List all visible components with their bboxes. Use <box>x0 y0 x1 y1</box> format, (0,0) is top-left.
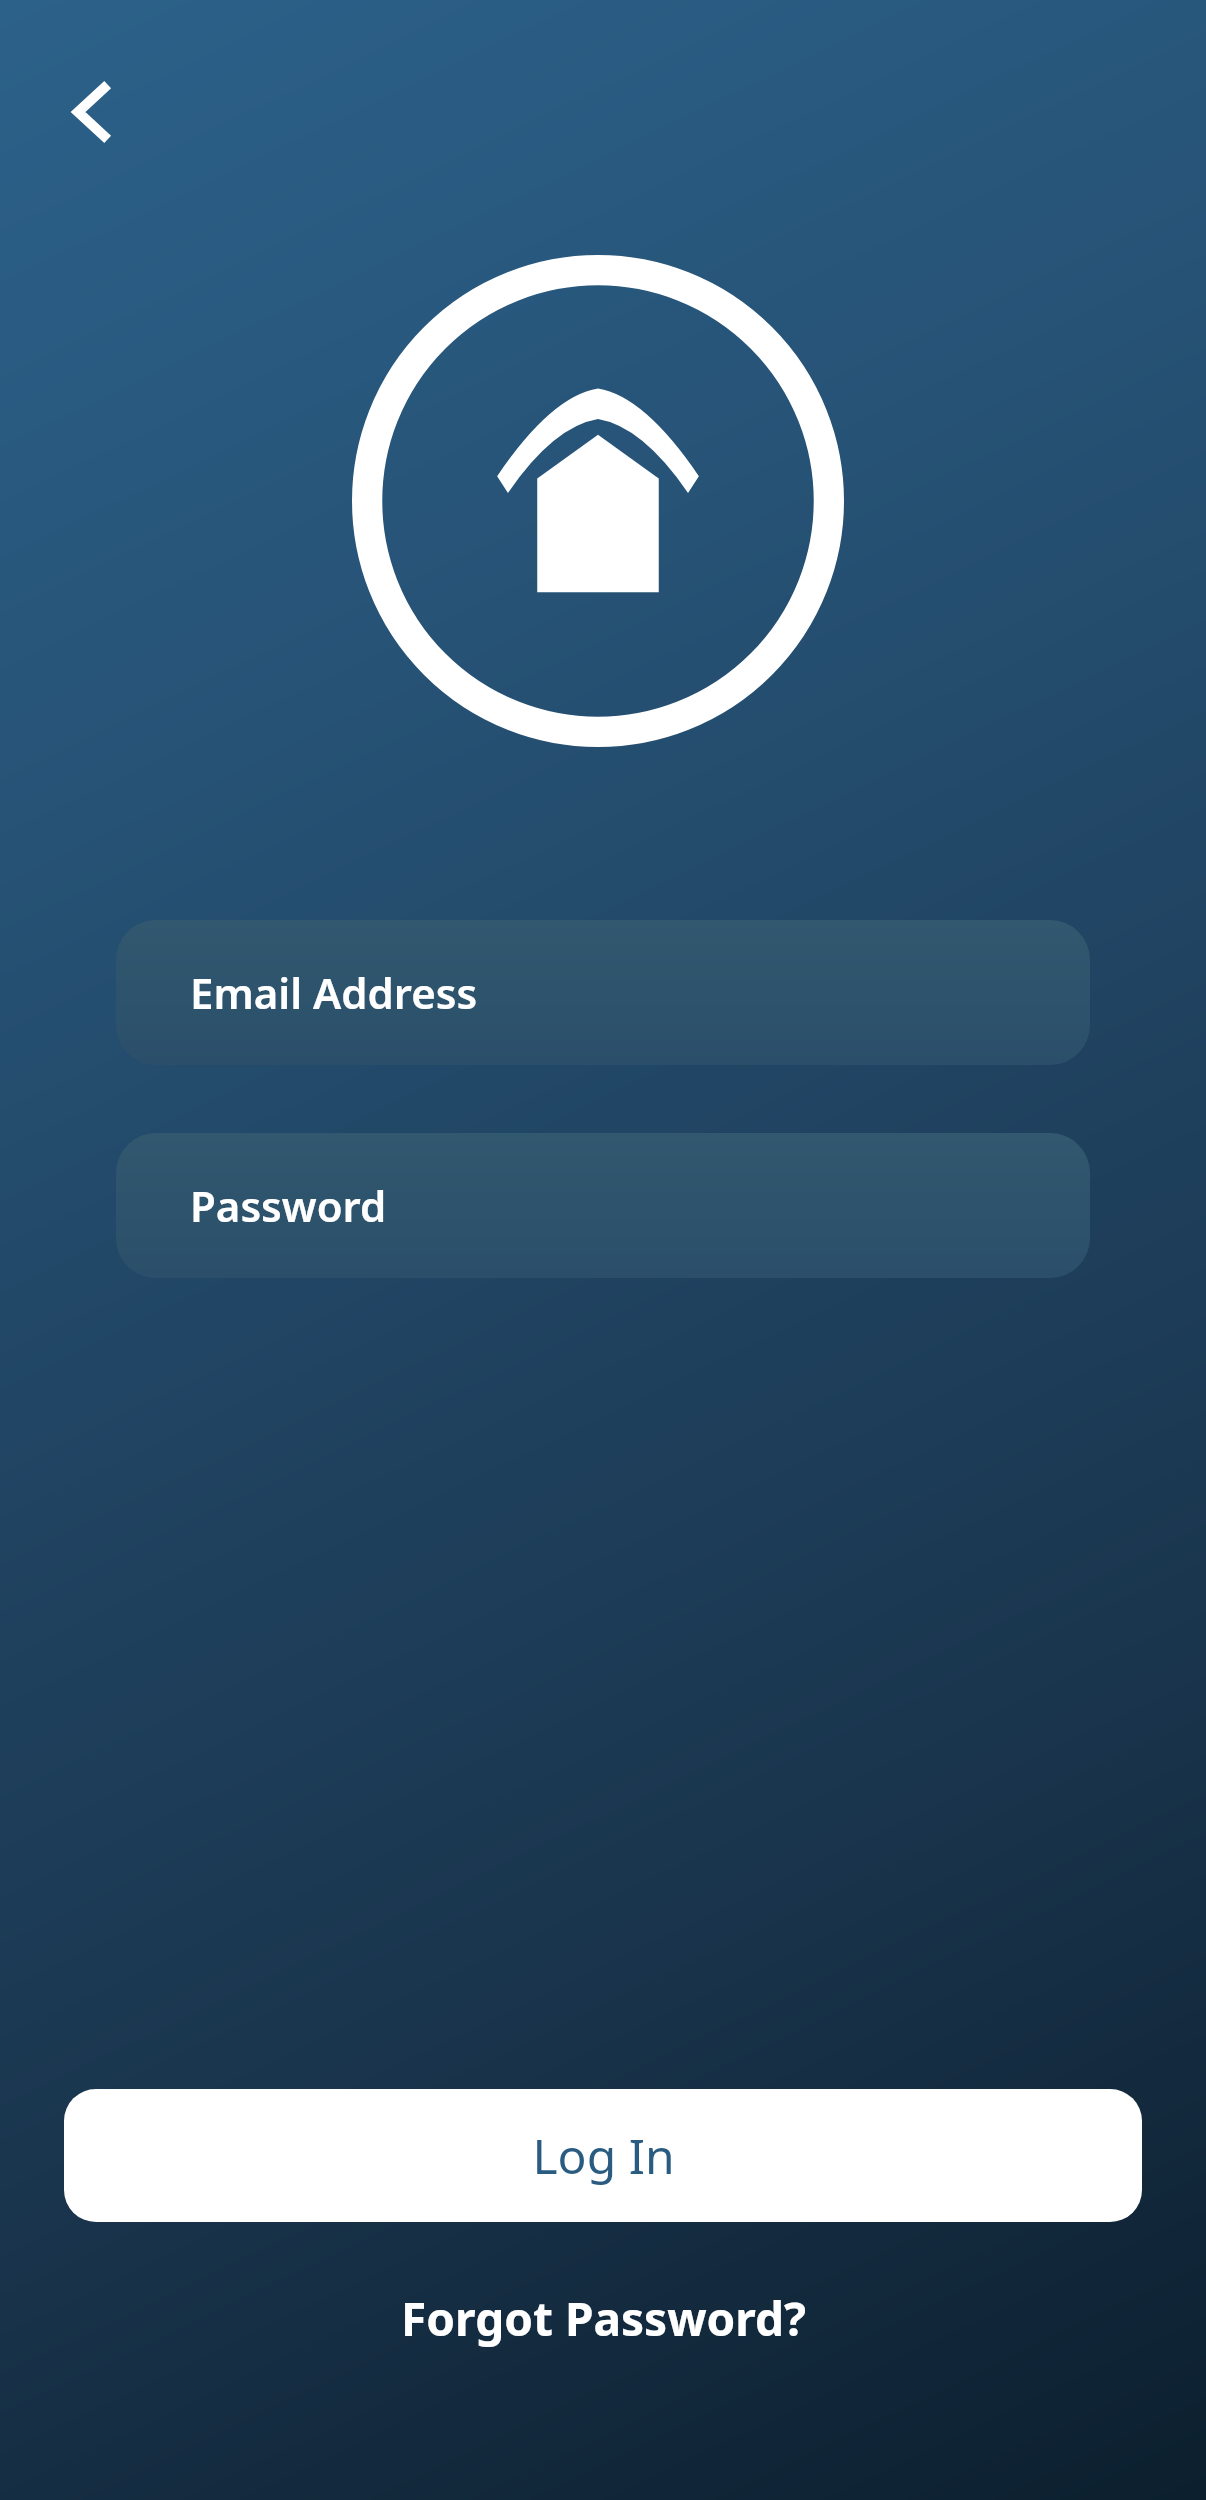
button[interactable]: Password <box>116 1133 1090 1278</box>
staticText: Password <box>190 1177 387 1234</box>
staticText: Forgot Password? <box>401 2287 806 2350</box>
button[interactable]: Email Address <box>116 920 1090 1065</box>
button[interactable]: Log In <box>64 2089 1142 2222</box>
staticText: Email Address <box>190 964 478 1021</box>
button[interactable]: Forgot Password? <box>377 2277 830 2360</box>
staticText: Log In <box>532 2123 675 2188</box>
button[interactable]: Back <box>34 62 134 162</box>
